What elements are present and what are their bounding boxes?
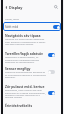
button[interactable]: Toggle on (53, 25, 60, 29)
staticText: Beállíthatja, hogy mennyi idő után kapcs… (5, 89, 46, 99)
staticText: Navigációs sáv típusa (5, 33, 41, 37)
staticText: Sötét mód (5, 25, 19, 29)
button[interactable]: Toggle on (48, 91, 55, 95)
button[interactable]: Toggle off (48, 70, 55, 74)
staticText: Érintésérzékelés (5, 103, 33, 107)
staticText: Háttér, téma (5, 17, 19, 20)
button[interactable]: Sötét mód (3, 22, 61, 31)
staticText: Válassza ki a kívánt típust: gesztusok v… (5, 38, 46, 46)
staticText: Tweriller/lapjk adatsáv témája (5, 51, 54, 55)
staticText: Tájékoztató a kijelző tetején, az állapo… (5, 56, 40, 64)
staticText: Display (9, 5, 23, 10)
button[interactable]: Toggle on (48, 53, 55, 57)
staticText: Zár pulzust mód- kertue (5, 84, 45, 88)
staticText: Képernyő elforgatásának figyelése és az … (5, 71, 46, 79)
staticText: Sensor megfigy (5, 66, 31, 70)
button[interactable]: Back (3, 2, 9, 12)
button[interactable]: Search (52, 2, 60, 12)
